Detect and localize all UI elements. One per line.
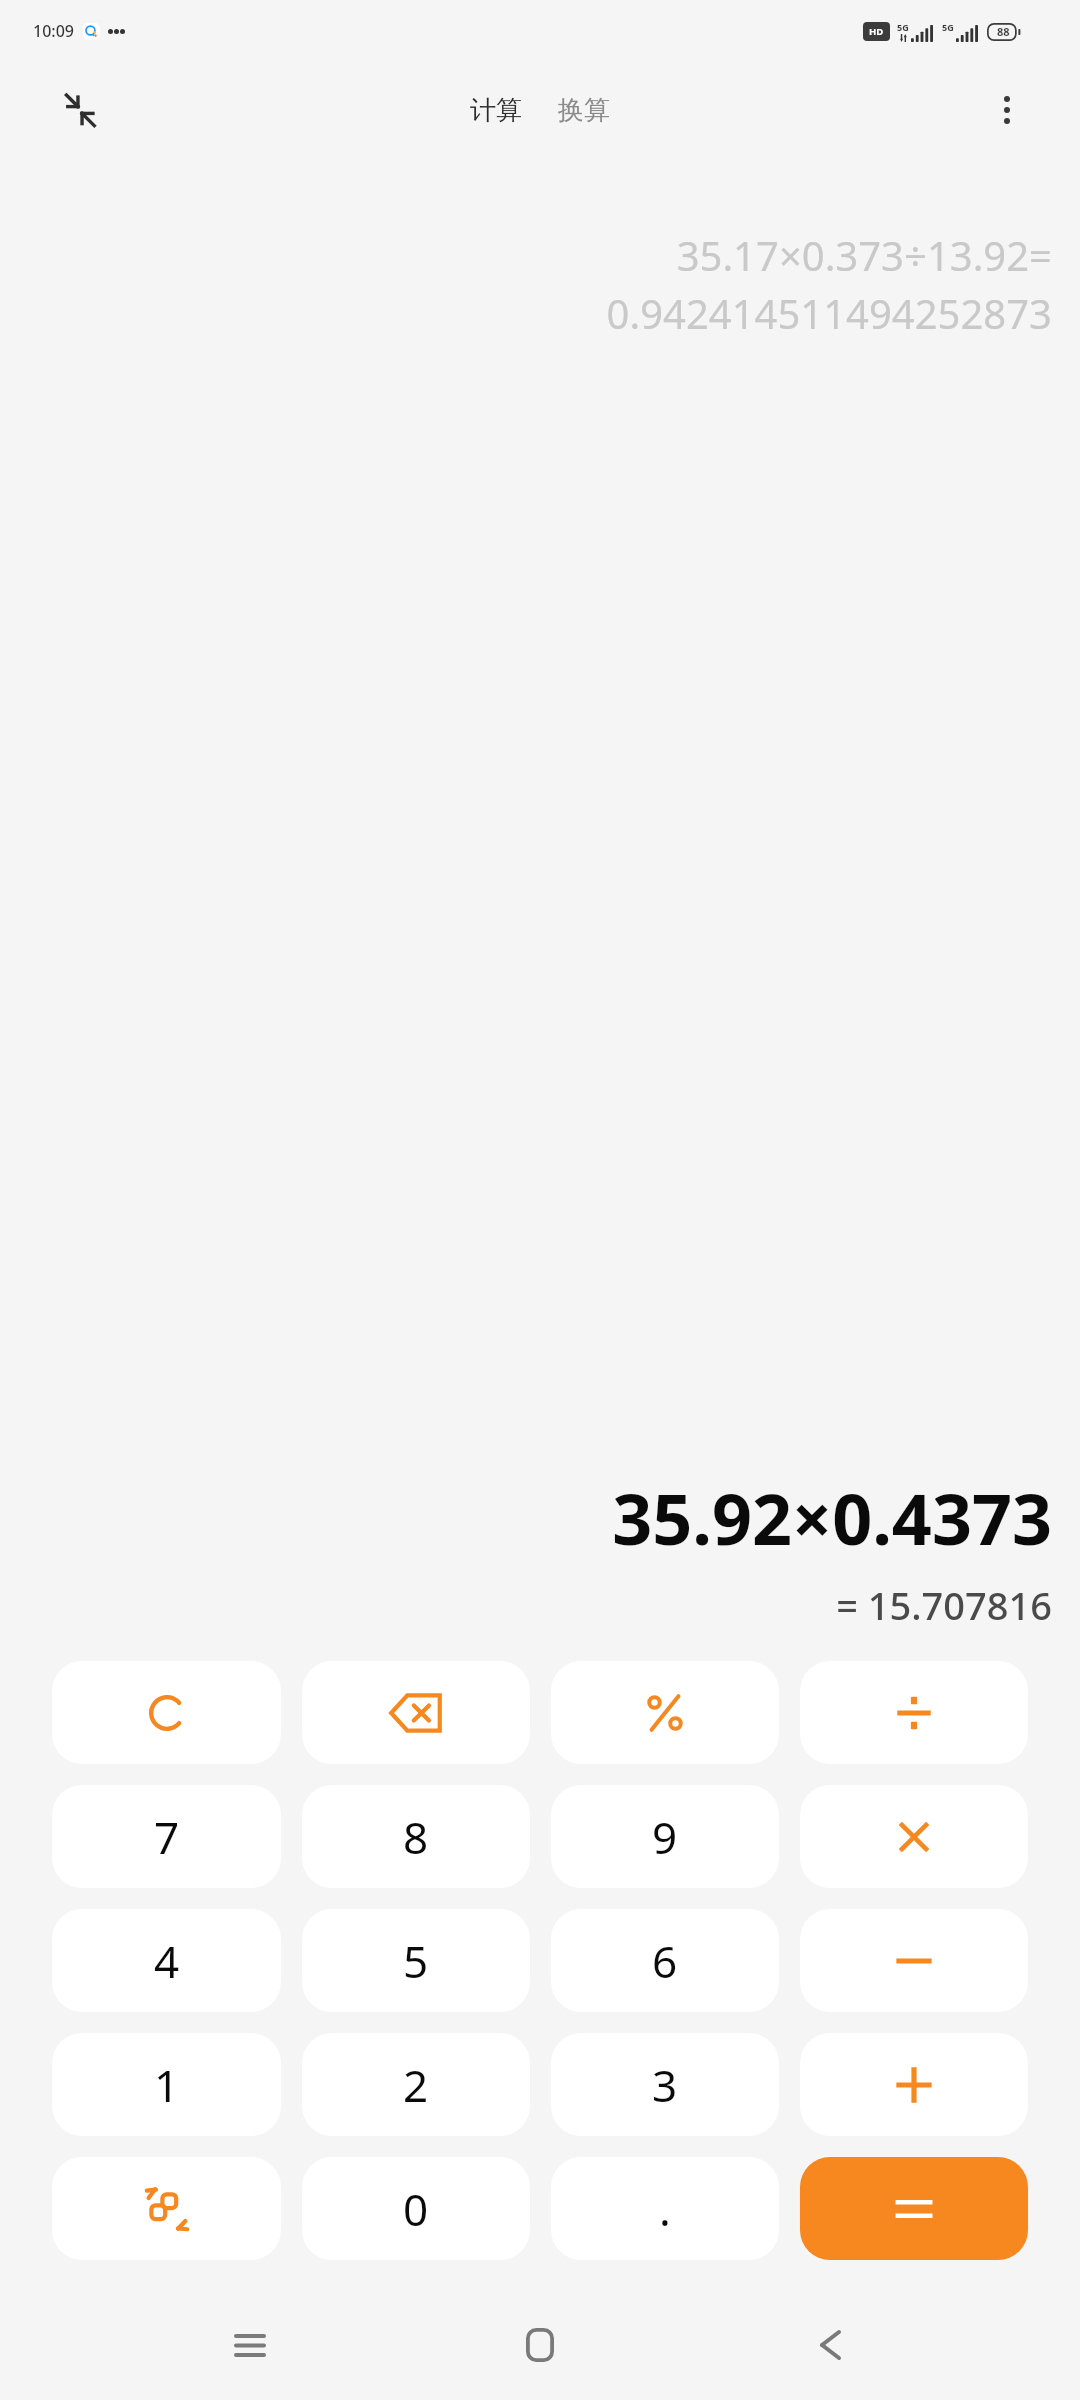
button[interactable]: 6: [551, 1909, 779, 2012]
button[interactable]: Back: [790, 2305, 870, 2385]
button[interactable]: More options: [978, 81, 1036, 139]
staticText: 35.92×0.4373: [612, 1470, 1052, 1565]
button[interactable]: [800, 2157, 1028, 2260]
button[interactable]: 4: [52, 1909, 281, 2012]
staticText: 0.942414511494252873: [606, 286, 1052, 340]
staticText: 2: [403, 2055, 429, 2115]
button[interactable]: [800, 1785, 1028, 1888]
button[interactable]: Recents: [210, 2305, 290, 2385]
button[interactable]: 计算: [460, 86, 532, 135]
button[interactable]: 0: [302, 2157, 530, 2260]
staticText: = 15.707816: [836, 1579, 1052, 1631]
staticText: .: [659, 2179, 671, 2239]
staticText: 7: [154, 1807, 180, 1867]
button[interactable]: [800, 1909, 1028, 2012]
staticText: 35.17×0.373÷13.92=: [676, 228, 1052, 282]
button[interactable]: [551, 1661, 779, 1764]
button[interactable]: .: [551, 2157, 779, 2260]
button[interactable]: 3: [551, 2033, 779, 2136]
staticText: 计算: [470, 94, 522, 127]
staticText: 88: [997, 24, 1010, 39]
staticText: 5: [403, 1931, 429, 1991]
button[interactable]: Collapse: [50, 80, 110, 140]
button[interactable]: 5: [302, 1909, 530, 2012]
button[interactable]: 换算: [548, 86, 620, 135]
button[interactable]: 8: [302, 1785, 530, 1888]
button[interactable]: [800, 2033, 1028, 2136]
staticText: 4: [154, 1931, 180, 1991]
staticText: 8: [403, 1807, 429, 1867]
button[interactable]: [52, 1661, 281, 1764]
button[interactable]: Backspace: [302, 1661, 530, 1764]
button[interactable]: [800, 1661, 1028, 1764]
staticText: 1: [154, 2055, 180, 2115]
button[interactable]: Home: [500, 2305, 580, 2385]
button[interactable]: 7: [52, 1785, 281, 1888]
button[interactable]: 2: [302, 2033, 530, 2136]
staticText: 5G: [897, 21, 909, 33]
staticText: 9: [652, 1807, 678, 1867]
staticText: 3: [652, 2055, 678, 2115]
staticText: 5G: [942, 21, 954, 33]
button[interactable]: 1: [52, 2033, 281, 2136]
button[interactable]: Scientific mode: [52, 2157, 281, 2260]
button[interactable]: 9: [551, 1785, 779, 1888]
staticText: 6: [652, 1931, 678, 1991]
staticText: 换算: [558, 94, 610, 127]
staticText: 0: [403, 2179, 429, 2239]
staticText: HD: [869, 25, 884, 38]
staticText: 10:09: [33, 20, 74, 42]
